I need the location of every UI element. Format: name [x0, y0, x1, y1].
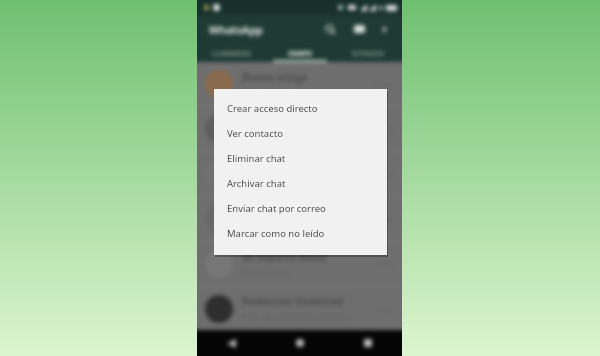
button[interactable]: Eliminar chat — [214, 146, 387, 171]
staticText: 12:55 — [374, 169, 394, 179]
button[interactable]: CHATS — [266, 44, 334, 62]
staticText: Ana — [242, 205, 262, 219]
button[interactable]: Marcar como no leído — [214, 221, 387, 246]
staticText: LLAMADAS — [212, 48, 252, 58]
button[interactable]: ESTADOS — [334, 44, 402, 62]
button[interactable]: Back — [197, 330, 266, 356]
button[interactable]: More options — [374, 19, 394, 39]
staticText: Archivar chat — [227, 177, 286, 190]
staticText: Redaccion Undetred — [242, 294, 343, 308]
staticText: Crear acceso directo — [227, 102, 318, 115]
staticText: 13:20 — [374, 124, 394, 134]
staticText: Marcar como no leído — [227, 227, 325, 240]
button[interactable]: Carlos Ruiz — [197, 152, 402, 196]
button[interactable]: Recents — [334, 330, 402, 356]
button[interactable]: Buena amiga — [197, 62, 402, 106]
button[interactable]: Search — [319, 18, 341, 40]
staticText: Ver contacto — [227, 127, 283, 140]
staticText: WhatsApp — [209, 22, 263, 37]
staticText: CHATS — [288, 48, 312, 58]
button[interactable]: Enviar chat por correo — [214, 196, 387, 221]
staticText: Buena amiga — [242, 70, 308, 84]
staticText: Eliminar chat — [227, 152, 286, 165]
staticText: Te llamo luego — [242, 222, 301, 234]
button[interactable]: Redaccion Undetred — [197, 287, 402, 330]
button[interactable]: Mi Soporte Movil — [197, 242, 402, 286]
button[interactable]: LLAMADAS — [197, 44, 266, 62]
button[interactable]: Grupo trabajo — [197, 107, 402, 151]
staticText: Perfecto gracias — [242, 177, 307, 189]
staticText: Enviar chat por correo — [227, 202, 326, 215]
staticText: Hola que tal — [242, 87, 291, 99]
staticText: ESTADOS — [352, 48, 385, 58]
staticText: Carlos Ruiz — [242, 160, 297, 174]
button[interactable]: Home — [266, 330, 334, 356]
button[interactable]: Crear acceso directo — [214, 96, 387, 121]
staticText: 11:30 — [374, 214, 394, 224]
button[interactable]: Camera — [348, 18, 370, 40]
button[interactable]: Ana — [197, 197, 402, 241]
button[interactable]: Archivar chat — [214, 171, 387, 196]
button[interactable]: Ver contacto — [214, 121, 387, 146]
staticText: Mi Soporte Movil — [242, 250, 326, 264]
staticText: Nos vemos manana — [242, 132, 322, 144]
